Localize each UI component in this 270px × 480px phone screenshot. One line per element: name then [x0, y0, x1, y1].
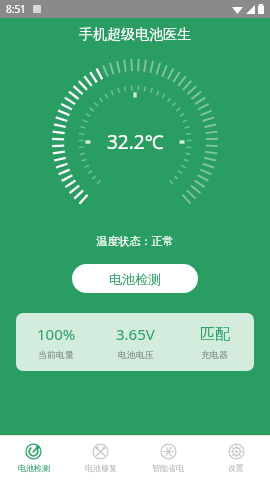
staticText: 100%	[37, 324, 76, 344]
staticText: 充电器	[201, 349, 228, 360]
staticText: 手机超级电池医生	[79, 26, 191, 44]
staticText: 当前电量	[38, 349, 74, 360]
staticText: 电池电压	[118, 349, 154, 360]
staticText: 温度状态：正常	[0, 234, 270, 248]
button[interactable]: 电池检测	[0, 436, 67, 480]
staticText: 设置	[228, 463, 244, 473]
staticText: 8:51	[6, 2, 26, 16]
staticText: 智能省电	[152, 463, 184, 473]
button[interactable]: 电池修复	[67, 436, 134, 480]
staticText: 32.2℃	[107, 129, 164, 155]
button[interactable]: 100%	[16, 313, 254, 371]
staticText: 电池修复	[85, 463, 117, 473]
staticText: 3.65V	[116, 324, 155, 344]
other: 电池修复	[92, 443, 109, 460]
button[interactable]: 电池检测	[72, 264, 198, 293]
staticText: 电池检测	[109, 271, 161, 287]
other: 电池检测	[25, 443, 42, 460]
button[interactable]: 设置	[202, 436, 270, 480]
other: 设置	[228, 443, 245, 460]
button[interactable]: 智能省电	[134, 436, 202, 480]
staticText: 电池检测	[18, 463, 50, 473]
staticText: 匹配	[200, 325, 230, 344]
other: 智能省电	[160, 443, 177, 460]
